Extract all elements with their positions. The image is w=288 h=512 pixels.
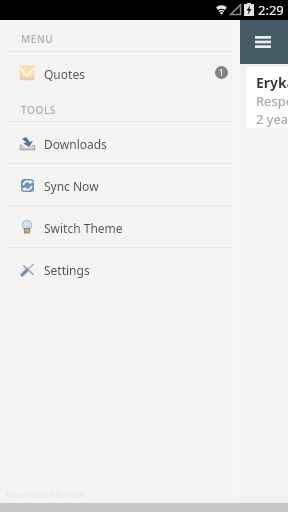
button[interactable]: Quotes <box>0 52 240 93</box>
staticText: 2 years ago <box>256 110 288 128</box>
staticText: Respect yourself <box>256 92 288 110</box>
staticText: Downloads <box>44 136 107 152</box>
staticText: Settings <box>44 262 90 278</box>
staticText: 1 <box>219 67 224 78</box>
staticText: MENU <box>21 32 54 46</box>
button[interactable]: Switch Theme <box>0 206 240 247</box>
staticText: Open source licenses <box>6 489 86 500</box>
staticText: Switch Theme <box>44 220 123 236</box>
button[interactable]: Settings <box>0 248 240 289</box>
staticText: Sync Now <box>44 178 99 194</box>
button[interactable]: Downloads <box>0 122 240 163</box>
staticText: 2:29 <box>258 1 284 19</box>
staticText: Quotes <box>44 66 85 82</box>
button[interactable]: Erykah Badu <box>246 67 288 128</box>
button[interactable]: Open navigation drawer <box>248 27 278 57</box>
button[interactable]: Sync Now <box>0 164 240 205</box>
staticText: Erykah Badu <box>256 73 288 92</box>
staticText: TOOLS <box>21 103 56 117</box>
